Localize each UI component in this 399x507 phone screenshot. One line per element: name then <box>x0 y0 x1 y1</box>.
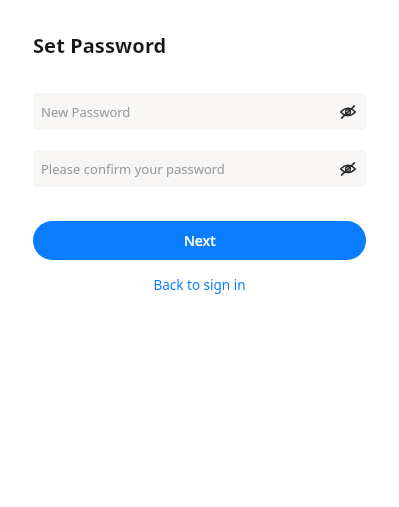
button[interactable]: Show password <box>333 154 363 184</box>
button[interactable]: New Password <box>33 93 366 130</box>
button[interactable]: Back to sign in <box>33 276 366 294</box>
button[interactable]: Please confirm your password <box>33 150 366 187</box>
button[interactable]: Next <box>33 221 366 260</box>
staticText: New Password <box>41 103 333 121</box>
staticText: Back to sign in <box>153 276 246 294</box>
button[interactable]: Show password <box>333 97 363 127</box>
staticText: Next <box>184 231 216 250</box>
staticText: Set Password <box>33 32 167 59</box>
staticText: Please confirm your password <box>41 160 333 178</box>
